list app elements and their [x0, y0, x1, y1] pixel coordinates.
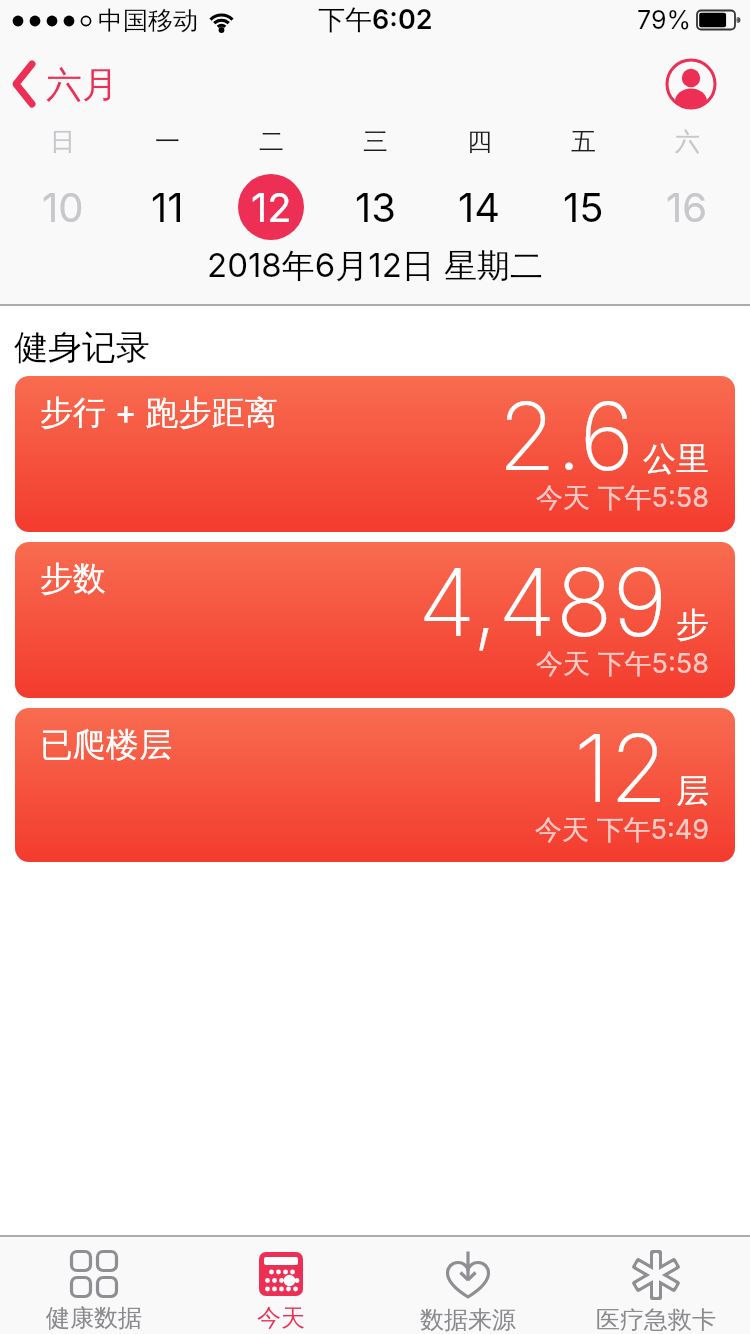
staticText: 4,489 — [418, 545, 668, 659]
button[interactable]: 医疗急救卡 — [562, 1237, 750, 1334]
staticText: 步行 + 跑步距离 — [40, 392, 278, 434]
staticText: 五 — [571, 126, 596, 156]
staticText: 今天 下午5:58 — [536, 647, 709, 681]
staticText: 四 — [467, 126, 492, 156]
button[interactable]: 13 — [323, 174, 427, 240]
button[interactable]: 步数 — [15, 542, 735, 698]
staticText: 步数 — [40, 558, 106, 600]
button[interactable]: 数据来源 — [374, 1237, 562, 1334]
staticText: 三 — [363, 126, 388, 156]
staticText: 日 — [50, 126, 75, 156]
staticText: 数据来源 — [420, 1305, 516, 1334]
staticText: 步 — [676, 604, 709, 646]
staticText: 2.6 — [498, 379, 635, 493]
staticText: 11 — [151, 183, 184, 231]
staticText: 医疗急救卡 — [596, 1305, 716, 1334]
staticText: 公里 — [643, 438, 709, 480]
staticText: 16 — [666, 183, 708, 231]
staticText: 12 — [251, 183, 292, 231]
button[interactable]: 健康数据 — [0, 1237, 187, 1334]
staticText: 六 — [675, 126, 700, 156]
button[interactable]: 10 — [10, 174, 115, 240]
staticText: 健康数据 — [46, 1303, 142, 1333]
staticText: 15 — [563, 183, 604, 231]
button[interactable]: 16 — [635, 174, 739, 240]
staticText: 10 — [42, 183, 84, 231]
button[interactable]: 六月 — [12, 60, 118, 108]
staticText: 一 — [155, 126, 180, 156]
button[interactable]: 今天 — [187, 1237, 374, 1334]
staticText: 今天 下午5:58 — [536, 481, 709, 515]
staticText: 14 — [458, 183, 501, 231]
button[interactable]: 11 — [115, 174, 219, 240]
staticText: 2018年6月12日 星期二 — [207, 245, 544, 287]
button[interactable]: 步行 + 跑步距离 — [15, 376, 735, 532]
staticText: 13 — [355, 183, 396, 231]
button[interactable] — [665, 58, 717, 110]
staticText: 下午6:02 — [318, 3, 433, 37]
staticText: 12 — [574, 711, 668, 825]
staticText: 层 — [676, 770, 709, 812]
button[interactable]: 14 — [427, 174, 531, 240]
button[interactable]: 已爬楼层 — [15, 708, 735, 862]
staticText: 六月 — [46, 62, 118, 107]
button[interactable]: 15 — [531, 174, 635, 240]
staticText: 二 — [259, 126, 284, 156]
staticText: 79% — [637, 5, 691, 35]
staticText: 健身记录 — [14, 326, 150, 369]
staticText: 中国移动 — [98, 5, 198, 36]
staticText: 今天 下午5:49 — [535, 813, 709, 847]
button[interactable]: 12 — [219, 174, 323, 240]
staticText: 已爬楼层 — [40, 724, 172, 766]
staticText: 今天 — [257, 1303, 305, 1333]
